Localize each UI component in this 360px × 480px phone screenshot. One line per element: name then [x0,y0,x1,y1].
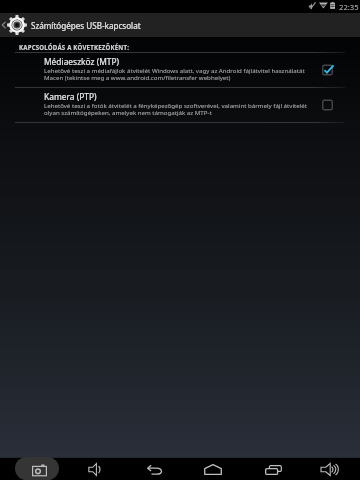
button[interactable]: Recent apps [243,457,303,480]
button[interactable]: Volume up [300,457,360,480]
button[interactable]: Kamera (PTP) [0,88,360,122]
staticText: Macen (tekintse meg a www.android.com/fi… [44,73,231,81]
staticText: Lehetővé teszi a médiafájlok átvitelét W… [44,66,305,74]
button[interactable]: Volume down [64,457,124,480]
button[interactable]: Számítógépes USB-kapcsolat [0,13,360,37]
staticText: Lehetővé teszi a fotók átvitelét a fényk… [44,101,307,109]
staticText: Kamera (PTP) [44,91,97,102]
staticText: KAPCSOLÓDÁS A KÖVETKEZŐKÉNT: [19,43,130,51]
button[interactable]: Back [123,457,183,480]
button[interactable]: Screenshot [7,457,67,480]
staticText: olyan számítógépeken, amelyek nem támoga… [44,108,212,116]
staticText: Számítógépes USB-kapcsolat [31,20,141,31]
button[interactable]: Home [183,457,243,480]
staticText: Médiaeszköz (MTP) [44,56,120,67]
button[interactable]: Médiaeszköz (MTP) [0,53,360,87]
staticText: 22:35 [339,2,359,12]
